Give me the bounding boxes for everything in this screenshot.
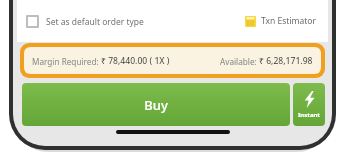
staticText: Set as default order type bbox=[46, 16, 144, 28]
staticText: ₹ 78,440.00 ( 1X ) bbox=[101, 55, 170, 67]
staticText: Margin Required: bbox=[32, 56, 101, 67]
staticText: ₹ 6,28,171.98 bbox=[259, 55, 313, 67]
staticText: Buy bbox=[144, 96, 168, 114]
staticText: Txn Estimator bbox=[261, 15, 317, 27]
button[interactable]: Txn Estimator bbox=[243, 11, 319, 31]
button[interactable]: Set as default order type bbox=[26, 11, 144, 32]
button[interactable]: Margin Required: bbox=[20, 43, 325, 78]
staticText: Available: bbox=[220, 56, 259, 67]
staticText: Instant bbox=[298, 111, 320, 119]
button[interactable]: Buy bbox=[22, 83, 290, 126]
button[interactable]: Instant order bbox=[293, 83, 325, 126]
